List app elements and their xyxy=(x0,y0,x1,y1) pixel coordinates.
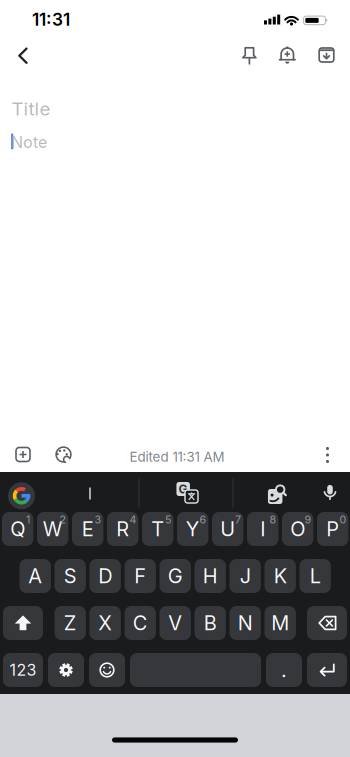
staticText: U xyxy=(220,517,235,541)
staticText: P xyxy=(326,517,339,541)
button[interactable]: Translate xyxy=(172,477,202,507)
button[interactable]: Archive xyxy=(308,37,344,73)
staticText: 3 xyxy=(94,513,101,526)
staticText: S xyxy=(64,564,77,588)
staticText: A xyxy=(28,564,42,588)
button[interactable]: V xyxy=(159,606,191,640)
button[interactable]: Emoji xyxy=(89,653,125,687)
button[interactable]: K xyxy=(264,559,296,593)
button[interactable]: Add reminder xyxy=(269,37,305,73)
button[interactable]: T xyxy=(142,512,173,546)
staticText: F xyxy=(134,564,146,588)
button[interactable]: M xyxy=(264,606,296,640)
button[interactable]: P xyxy=(317,512,348,546)
staticText: 4 xyxy=(129,513,136,526)
button[interactable]: N xyxy=(229,606,261,640)
button[interactable]: F xyxy=(124,559,156,593)
staticText: 11:31 xyxy=(32,9,70,30)
staticText: H xyxy=(203,564,218,588)
button[interactable]: G xyxy=(159,559,191,593)
staticText: 1 xyxy=(26,513,30,526)
staticText: B xyxy=(204,611,217,635)
staticText: Q xyxy=(10,517,25,541)
button[interactable]: 123 xyxy=(3,653,43,687)
button[interactable]: Pin note xyxy=(231,37,267,73)
button[interactable]: D xyxy=(89,559,121,593)
staticText: O xyxy=(290,517,305,541)
button[interactable]: Shift xyxy=(3,606,43,640)
button[interactable]: Return xyxy=(307,653,347,687)
button[interactable]: C xyxy=(124,606,156,640)
button[interactable]: X xyxy=(89,606,121,640)
staticText: K xyxy=(274,564,287,588)
button[interactable]: Add item xyxy=(5,436,41,472)
staticText: 2 xyxy=(59,513,66,526)
button[interactable]: Z xyxy=(54,606,86,640)
staticText: X xyxy=(98,611,112,635)
button[interactable]: H xyxy=(194,559,226,593)
staticText: Note xyxy=(11,133,47,152)
staticText: 6 xyxy=(199,513,206,526)
button[interactable]: . xyxy=(266,653,302,687)
staticText: W xyxy=(43,517,63,541)
button[interactable]: Settings xyxy=(48,653,84,687)
staticText: I xyxy=(260,517,265,541)
button[interactable]: R xyxy=(107,512,138,546)
staticText: T xyxy=(151,517,164,541)
staticText: 8 xyxy=(269,513,276,526)
button[interactable]: J xyxy=(229,559,261,593)
staticText: Edited 11:31 AM xyxy=(129,449,224,465)
button[interactable]: Background options xyxy=(45,436,81,472)
staticText: 7 xyxy=(235,513,241,526)
staticText: G xyxy=(168,564,183,588)
staticText: . xyxy=(281,658,287,682)
staticText: E xyxy=(82,517,94,541)
button[interactable]: I xyxy=(247,512,278,546)
staticText: 0 xyxy=(339,513,346,526)
button[interactable]: E xyxy=(72,512,103,546)
button[interactable]: A xyxy=(19,559,51,593)
button[interactable]: O xyxy=(282,512,313,546)
button[interactable]: W xyxy=(37,512,68,546)
button[interactable]: Image search xyxy=(263,479,293,509)
button[interactable]: B xyxy=(194,606,226,640)
button[interactable]: Delete xyxy=(307,606,347,640)
staticText: M xyxy=(271,611,289,635)
staticText: Z xyxy=(64,611,77,635)
staticText: C xyxy=(133,611,148,635)
staticText: J xyxy=(240,564,251,588)
button[interactable]: More options xyxy=(309,437,345,473)
staticText: 123 xyxy=(9,661,36,679)
staticText: G xyxy=(178,482,187,496)
staticText: 9 xyxy=(304,513,311,526)
staticText: D xyxy=(98,564,112,588)
button[interactable]: S xyxy=(54,559,86,593)
button[interactable]: U xyxy=(212,512,243,546)
button[interactable]: Back xyxy=(0,34,44,78)
staticText: N xyxy=(238,611,253,635)
staticText: Title xyxy=(11,98,50,120)
staticText: V xyxy=(168,611,182,635)
button[interactable]: Y xyxy=(177,512,208,546)
button[interactable]: Google xyxy=(7,482,35,510)
button[interactable]: Q xyxy=(2,512,33,546)
staticText: 5 xyxy=(165,513,171,526)
staticText: R xyxy=(116,517,129,541)
staticText: L xyxy=(310,564,321,588)
button[interactable]: Voice input xyxy=(315,478,345,508)
staticText: Y xyxy=(186,517,200,541)
button[interactable]: L xyxy=(299,559,331,593)
